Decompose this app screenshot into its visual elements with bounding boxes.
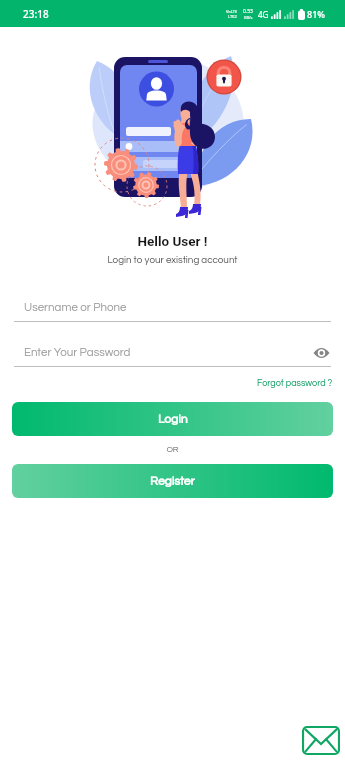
staticText: Hello User ! bbox=[0, 233, 345, 249]
staticText: 81% bbox=[307, 8, 325, 20]
staticText: KB/s bbox=[244, 15, 253, 20]
staticText: LTE2 bbox=[228, 14, 237, 19]
staticText: 4G bbox=[258, 9, 269, 20]
staticText: Register bbox=[150, 475, 195, 487]
staticText: 23:18 bbox=[23, 7, 49, 21]
staticText: Login to your existing account bbox=[0, 255, 345, 265]
button[interactable]: Forgot password ? bbox=[255, 376, 335, 391]
button[interactable]: Register bbox=[12, 464, 333, 498]
button[interactable]: Enter Your Password bbox=[0, 347, 345, 367]
staticText: 0.53 bbox=[243, 8, 253, 15]
staticText: Enter Your Password bbox=[24, 347, 313, 359]
button[interactable]: Mail bbox=[299, 718, 343, 762]
staticText: Login bbox=[158, 413, 188, 425]
button[interactable]: Login bbox=[12, 402, 333, 436]
staticText: OR bbox=[0, 445, 345, 454]
staticText: Username or Phone bbox=[24, 302, 330, 314]
button[interactable]: Username or Phone bbox=[0, 302, 345, 322]
staticText: Forgot password ? bbox=[257, 379, 333, 388]
staticText: VoLTE bbox=[226, 9, 238, 14]
